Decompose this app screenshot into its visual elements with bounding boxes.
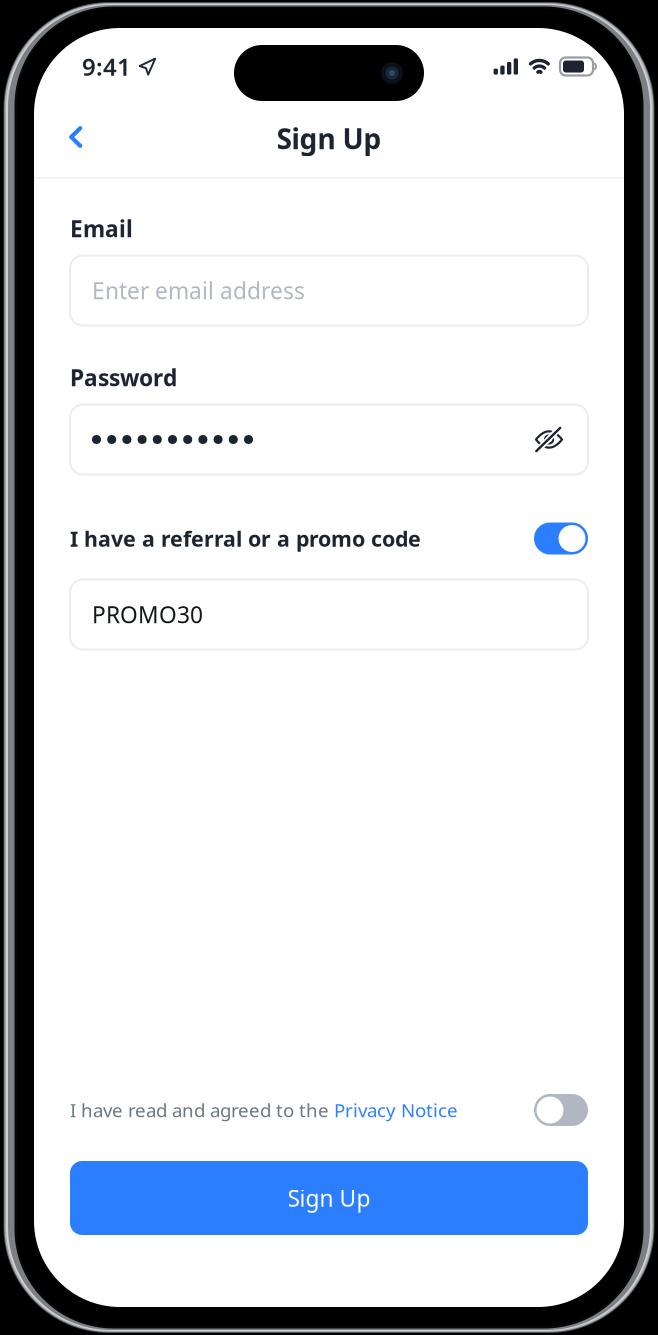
button[interactable]: Privacy Notice	[334, 1098, 458, 1122]
button[interactable]: Back	[34, 109, 127, 168]
staticText: I have a referral or a promo code	[70, 524, 421, 553]
staticText: PROMO30	[92, 599, 203, 629]
staticText: Sign Up	[287, 1183, 370, 1213]
staticText: Password	[70, 362, 177, 392]
staticText: I have read and agreed to the	[70, 1098, 334, 1122]
staticText: 9:41	[82, 51, 131, 82]
button[interactable]: Agree to the Privacy Notice	[534, 1094, 588, 1126]
staticText: Email	[70, 213, 133, 243]
button[interactable]: Sign Up	[70, 1161, 588, 1235]
button[interactable]: I have a referral or a promo code	[70, 521, 588, 555]
staticText: Privacy Notice	[334, 1098, 458, 1122]
button[interactable]: Show password	[532, 422, 566, 456]
staticText: Sign Up	[276, 120, 381, 157]
staticText: Enter email address	[92, 275, 305, 305]
